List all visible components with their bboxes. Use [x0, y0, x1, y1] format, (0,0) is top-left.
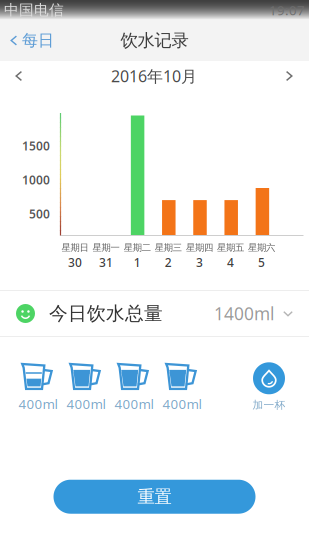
button[interactable]: Previous month [2, 61, 36, 91]
button[interactable]: 加一杯 [245, 362, 293, 411]
staticText: 400ml [66, 395, 105, 413]
staticText: 星期三 [155, 242, 182, 253]
staticText: 星期五 [217, 242, 244, 253]
staticText: 加一杯 [252, 398, 285, 411]
button[interactable]: Next month [272, 61, 306, 91]
staticText: 星期二 [124, 242, 151, 253]
staticText: 31 [99, 254, 113, 270]
button[interactable]: 400ml [110, 361, 158, 413]
staticText: 19:07 [269, 1, 305, 19]
staticText: 5 [258, 254, 265, 270]
button[interactable]: 今日饮水总量 [0, 290, 309, 337]
staticText: 400ml [162, 395, 201, 413]
button[interactable]: 重置 [53, 480, 255, 514]
button[interactable]: 400ml [14, 361, 62, 413]
staticText: 星期六 [248, 242, 275, 253]
staticText: 星期一 [93, 242, 120, 253]
staticText: 4 [227, 254, 234, 270]
staticText: 3 [196, 254, 203, 270]
staticText: 1 [134, 254, 141, 270]
staticText: 饮水记录 [120, 30, 188, 51]
staticText: 2 [165, 254, 172, 270]
staticText: 500 [29, 206, 50, 222]
staticText: 中国电信 [4, 1, 64, 19]
staticText: 每日 [22, 31, 54, 50]
staticText: 400ml [114, 395, 153, 413]
staticText: 2016年10月 [111, 65, 197, 87]
staticText: 重置 [137, 486, 171, 507]
button[interactable]: 400ml [158, 361, 206, 413]
staticText: 今日饮水总量 [49, 302, 163, 325]
staticText: 1400ml [214, 302, 274, 325]
staticText: 1500 [22, 138, 50, 154]
button[interactable]: 每日 [0, 20, 64, 61]
staticText: 星期四 [186, 242, 213, 253]
staticText: 30 [68, 254, 82, 270]
staticText: 400ml [18, 395, 57, 413]
button[interactable]: 400ml [62, 361, 110, 413]
staticText: 1000 [22, 172, 50, 188]
staticText: 星期日 [61, 242, 88, 253]
